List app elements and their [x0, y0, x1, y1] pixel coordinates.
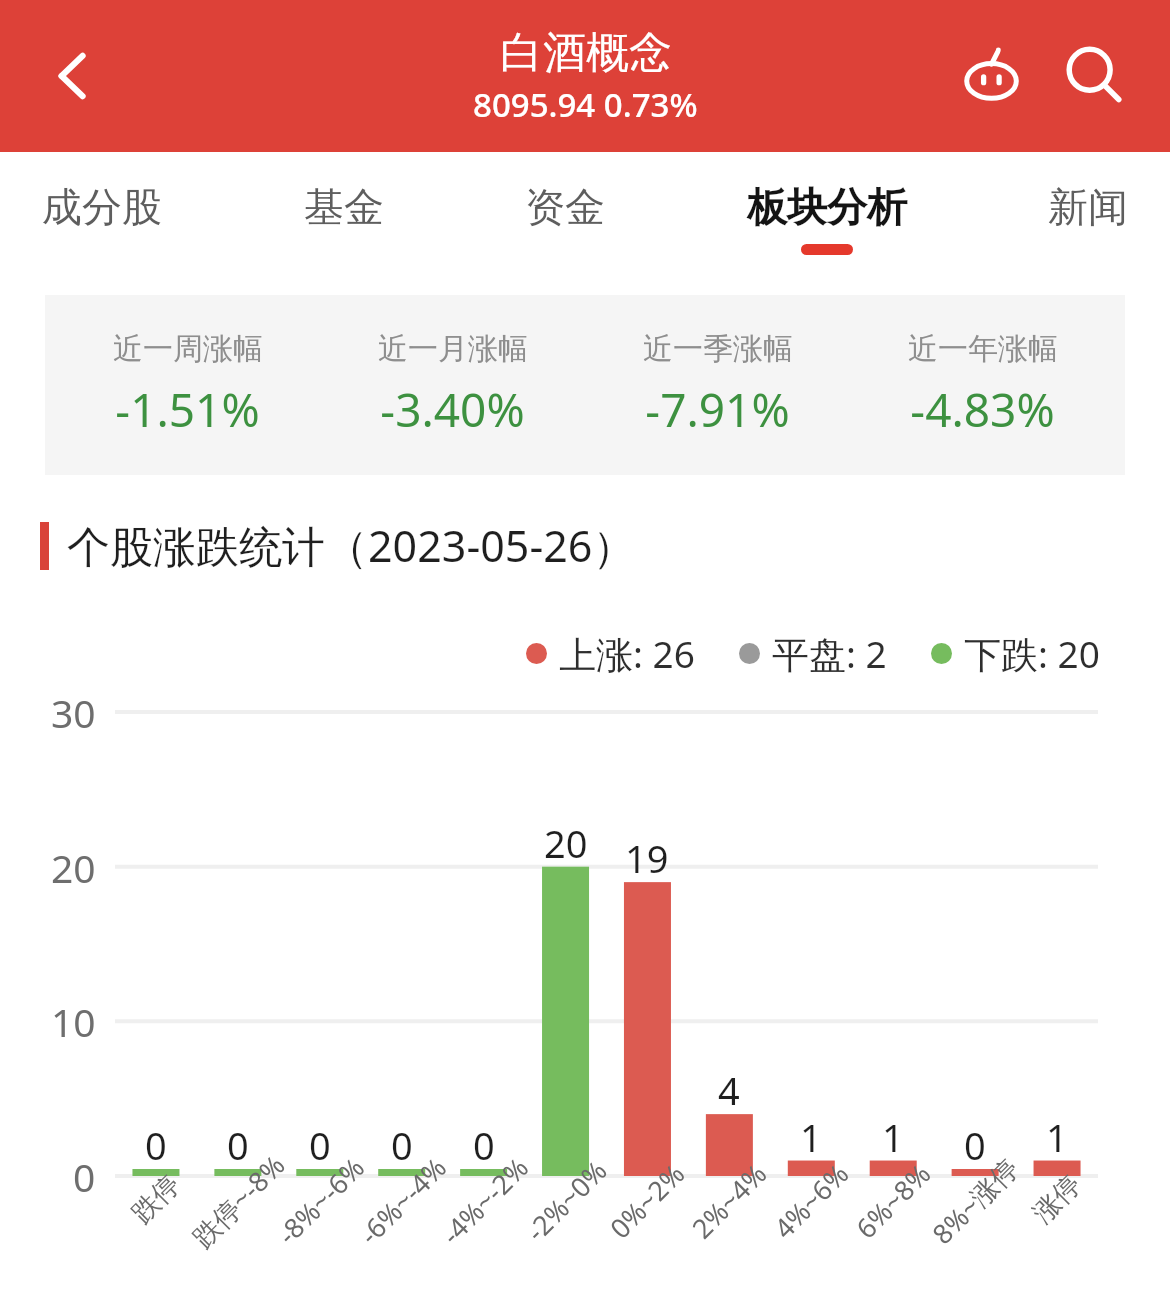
staticText: 近一月涨幅: [378, 330, 528, 368]
staticText: 近一年涨幅: [908, 330, 1058, 368]
staticText: 8095.94 0.73%: [473, 82, 698, 127]
staticText: 10: [51, 995, 96, 1048]
button[interactable]: 成分股: [42, 152, 162, 282]
staticText: 个股涨跌统计（2023-05-26）: [67, 516, 636, 575]
staticText: 新闻: [1048, 182, 1128, 232]
staticText: -4%~-2%: [433, 1149, 536, 1252]
staticText: 0%~2%: [601, 1155, 693, 1246]
staticText: 4%~6%: [765, 1155, 857, 1246]
staticText: 4: [718, 1064, 740, 1116]
staticText: 2%~4%: [683, 1155, 775, 1246]
staticText: 0: [227, 1119, 249, 1171]
staticText: -3.40%: [380, 378, 525, 441]
staticText: -4.83%: [910, 378, 1055, 441]
button[interactable]: 新闻: [1048, 152, 1128, 282]
staticText: 白酒概念: [500, 26, 672, 80]
staticText: -8%~-6%: [269, 1149, 372, 1252]
staticText: 0: [964, 1119, 986, 1171]
staticText: 跌停~-8%: [184, 1146, 293, 1255]
staticText: 成分股: [42, 182, 162, 232]
staticText: 0: [309, 1119, 331, 1171]
staticText: -1.51%: [115, 378, 260, 441]
button[interactable]: 上涨: 26: [526, 628, 695, 679]
staticText: 0: [473, 1119, 495, 1171]
staticText: 涨停: [1026, 1168, 1088, 1230]
staticText: 平盘: 2: [772, 628, 887, 679]
button[interactable]: Back: [30, 33, 116, 119]
staticText: 下跌: 20: [964, 628, 1100, 679]
staticText: 19: [625, 832, 669, 884]
staticText: 资金: [525, 182, 605, 232]
staticText: 0: [73, 1150, 96, 1203]
button[interactable]: 板块分析: [747, 152, 907, 282]
staticText: 20: [51, 841, 96, 894]
staticText: 1: [1046, 1111, 1068, 1163]
staticText: 0: [391, 1119, 413, 1171]
staticText: 8%~涨停: [924, 1149, 1026, 1252]
button[interactable]: 资金: [525, 152, 605, 282]
button[interactable]: 平盘: 2: [739, 628, 887, 679]
staticText: -7.91%: [645, 378, 790, 441]
staticText: 近一周涨幅: [113, 330, 263, 368]
staticText: 板块分析: [747, 182, 907, 232]
staticText: 0: [145, 1119, 167, 1171]
staticText: 跌停: [125, 1168, 187, 1230]
staticText: 1: [882, 1111, 904, 1163]
staticText: 1: [800, 1111, 822, 1163]
staticText: 6%~8%: [847, 1155, 939, 1246]
staticText: 20: [544, 817, 588, 869]
staticText: -2%~0%: [518, 1152, 614, 1249]
staticText: 上涨: 26: [559, 628, 695, 679]
button[interactable]: 下跌: 20: [931, 628, 1100, 679]
button[interactable]: Search: [1044, 26, 1144, 126]
staticText: 30: [51, 686, 96, 739]
staticText: 近一季涨幅: [643, 330, 793, 368]
staticText: 基金: [304, 182, 384, 232]
staticText: -6%~-4%: [351, 1149, 454, 1252]
button[interactable]: AI assistant: [944, 26, 1044, 126]
button[interactable]: 基金: [304, 152, 384, 282]
